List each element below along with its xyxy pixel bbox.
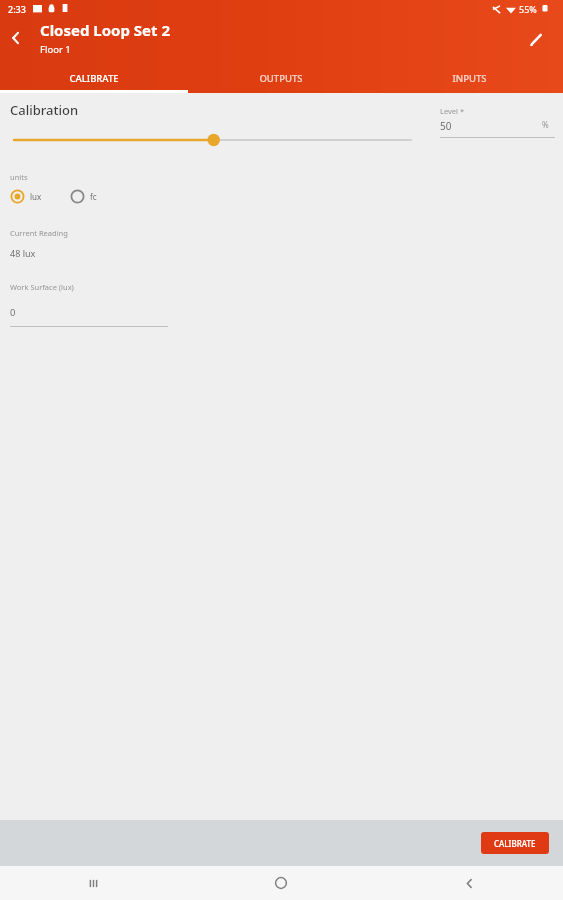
button[interactable]: Recent apps (0, 866, 187, 900)
staticText: 48 lux (10, 247, 36, 259)
staticText: Level * (440, 106, 465, 116)
button[interactable]: CALIBRATE (481, 832, 549, 854)
staticText: Calibration (10, 101, 79, 119)
staticText: 50 (440, 119, 452, 133)
button[interactable]: fc (70, 189, 97, 204)
staticText: Closed Loop Set 2 (40, 20, 171, 40)
staticText: CALIBRATE (494, 838, 536, 849)
button[interactable]: Back (2, 24, 30, 52)
button[interactable]: INPUTS (375, 63, 563, 93)
staticText: units (10, 172, 28, 182)
staticText: 2:33 (8, 3, 26, 15)
staticText: 0 (10, 306, 16, 319)
button[interactable]: lux (10, 189, 42, 204)
staticText: Current Reading (10, 228, 68, 238)
staticText: % (542, 119, 549, 130)
staticText: CALIBRATE (69, 72, 119, 85)
staticText: lux (30, 191, 42, 202)
button[interactable]: CALIBRATE (0, 63, 187, 93)
staticText: Work Surface (lux) (10, 282, 74, 292)
button[interactable]: Back (375, 866, 563, 900)
button[interactable]: Level slider (10, 129, 415, 151)
staticText: 55% (519, 3, 537, 15)
staticText: OUTPUTS (259, 72, 303, 85)
staticText: Floor 1 (40, 43, 71, 56)
button[interactable]: OUTPUTS (187, 63, 375, 93)
staticText: INPUTS (452, 72, 487, 85)
button[interactable]: Home (187, 866, 375, 900)
button[interactable]: Level * (440, 106, 555, 146)
staticText: fc (90, 191, 97, 202)
button[interactable]: 0 (10, 306, 168, 332)
button[interactable]: Edit (523, 27, 549, 53)
